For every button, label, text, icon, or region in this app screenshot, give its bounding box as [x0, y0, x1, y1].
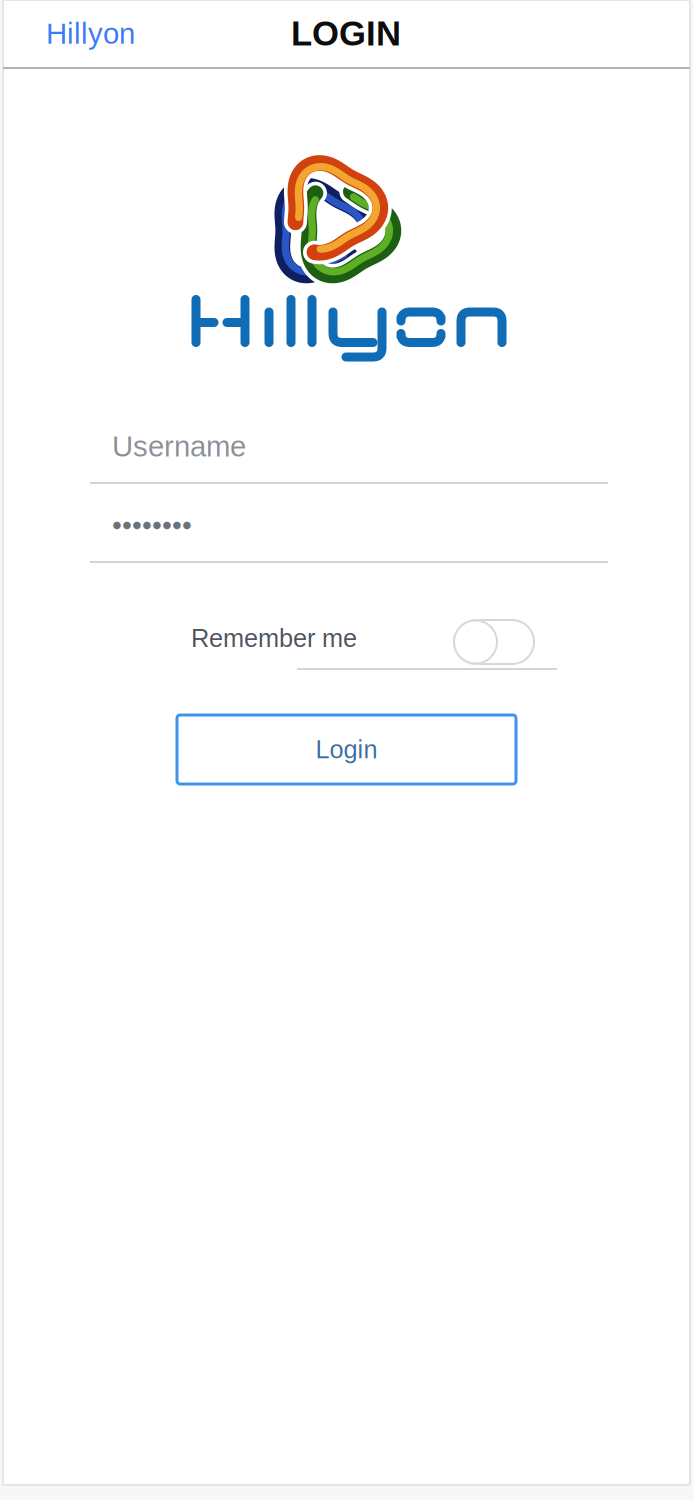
staticText: Remember me	[191, 624, 357, 652]
staticText: ••••••••	[112, 509, 192, 540]
button[interactable]: Remember me toggle, off	[453, 619, 535, 665]
button[interactable]: Hillyon	[46, 0, 186, 67]
staticText: Login	[315, 735, 377, 764]
staticText: LOGIN	[291, 14, 401, 53]
staticText: Username	[112, 430, 246, 463]
button[interactable]: Login	[177, 715, 516, 784]
staticText: Hillyon	[46, 17, 135, 50]
